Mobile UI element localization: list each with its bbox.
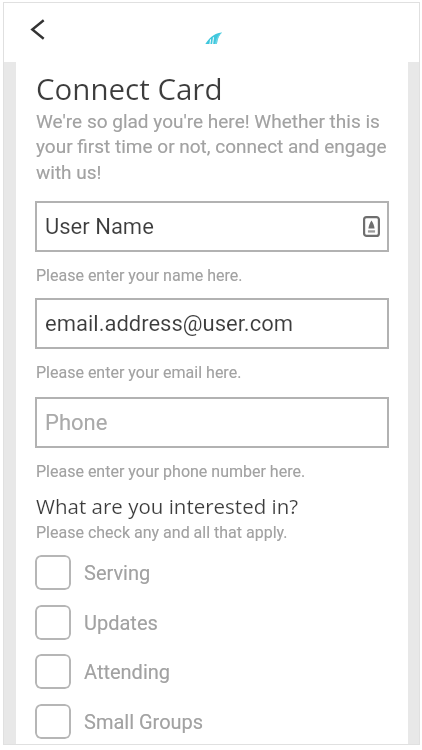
staticText: Phone (45, 410, 108, 436)
button[interactable]: Small Groups (16, 696, 408, 746)
staticText: Attending (84, 660, 171, 683)
staticText: We're so glad you're here! Whether this … (36, 110, 394, 184)
button[interactable]: Attending (16, 646, 408, 696)
staticText: Please check any and all that apply. (36, 523, 288, 542)
staticText: Connect Card (36, 68, 223, 108)
staticText: Please enter your phone number here. (36, 462, 306, 481)
staticText: What are you interested in? (36, 492, 299, 520)
staticText: Small Groups (84, 710, 204, 733)
button[interactable]: Back (18, 9, 58, 49)
button[interactable]: email.address@user.com (35, 298, 389, 349)
button[interactable]: Serving (16, 547, 408, 597)
button[interactable]: App logo (205, 31, 222, 44)
button[interactable]: Updates (16, 597, 408, 647)
staticText: Please enter your name here. (36, 266, 243, 285)
staticText: Serving (84, 561, 151, 584)
staticText: email.address@user.com (45, 311, 294, 337)
staticText: Updates (84, 611, 158, 634)
staticText: User Name (45, 214, 154, 240)
staticText: Please enter your email here. (36, 363, 242, 382)
button[interactable]: User Name (35, 201, 389, 252)
button[interactable]: Phone (35, 397, 389, 448)
